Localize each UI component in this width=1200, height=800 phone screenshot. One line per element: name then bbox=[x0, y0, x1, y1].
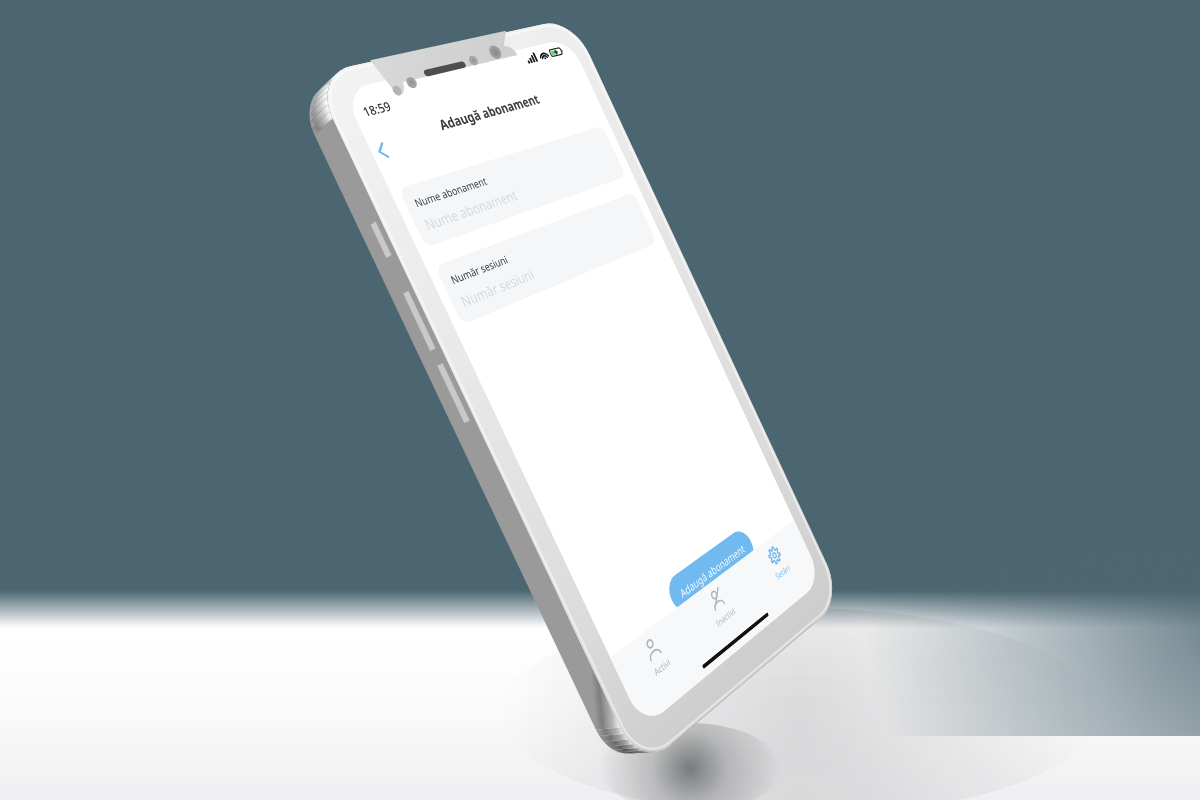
staticText: Număr sesiuni bbox=[448, 252, 510, 287]
staticText: Setări bbox=[774, 561, 791, 582]
staticText: Nume abonament bbox=[412, 174, 489, 210]
button[interactable]: Back bbox=[366, 134, 400, 166]
staticText: Activi bbox=[652, 655, 672, 678]
staticText: Număr sesiuni bbox=[457, 265, 537, 311]
button[interactable]: Inactivi bbox=[678, 561, 760, 653]
button[interactable]: Activi bbox=[610, 606, 700, 706]
staticText: Adaugă abonament bbox=[677, 541, 747, 601]
button[interactable]: Nume abonament bbox=[398, 125, 626, 248]
staticText: Nume abonament bbox=[421, 186, 520, 234]
staticText: 18:59 bbox=[360, 97, 394, 120]
staticText: Inactivi bbox=[714, 604, 737, 629]
button[interactable]: Adaugă abonament bbox=[664, 526, 759, 617]
button[interactable]: Setări bbox=[739, 520, 813, 605]
button[interactable]: Număr sesiuni bbox=[435, 192, 657, 325]
staticText: Adaugă abonament bbox=[366, 76, 594, 153]
